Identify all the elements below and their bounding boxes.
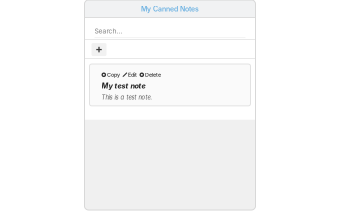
- staticText: Delete: [145, 72, 161, 78]
- button[interactable]: Delete: [139, 72, 161, 78]
- staticText: My test note: [101, 81, 145, 90]
- staticText: My Canned Notes: [141, 5, 199, 13]
- button[interactable]: Search...: [84, 18, 255, 40]
- button[interactable]: Copy: [101, 72, 120, 78]
- button[interactable]: New note: [91, 43, 106, 56]
- staticText: Search...: [94, 27, 122, 35]
- staticText: Edit: [128, 72, 137, 78]
- button[interactable]: Edit: [122, 72, 137, 78]
- staticText: This is a test note.: [101, 94, 152, 101]
- staticText: Copy: [107, 72, 120, 78]
